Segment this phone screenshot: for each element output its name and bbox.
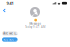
staticText: Are we still on for 7? bbox=[3, 32, 18, 35]
staticText: Yes, see you then! bbox=[3, 38, 18, 41]
button[interactable]: Contact details bbox=[25, 7, 45, 21]
staticText: iMessage bbox=[28, 22, 41, 25]
staticText: Today 9:41 AM bbox=[25, 25, 45, 29]
button[interactable]: Back bbox=[1, 7, 9, 15]
staticText: 🌼 bbox=[33, 18, 36, 21]
staticText: 9:41 bbox=[7, 0, 14, 6]
